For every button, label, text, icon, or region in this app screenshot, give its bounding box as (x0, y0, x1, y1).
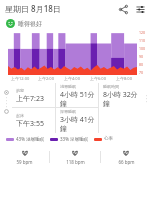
staticText: 上午4:00 (64, 76, 80, 81)
staticText: 上午6:00 (90, 76, 106, 81)
staticText: 睡眠時間 (103, 84, 119, 89)
staticText: 33% 深層睡眠 (60, 136, 89, 142)
staticText: 100 (139, 46, 146, 51)
button[interactable]: 66 bpm (101, 145, 151, 169)
staticText: 70 (139, 70, 144, 75)
staticText: 下午3:55 (16, 119, 44, 129)
staticText: 8小時 32分 鐘 (103, 90, 138, 108)
staticText: 星期日 8月18日 (5, 3, 61, 14)
button[interactable]: 睡眠時間 (99, 83, 141, 108)
staticText: 深層睡眠 (60, 109, 76, 114)
staticText: 59 bpm (16, 159, 33, 165)
staticText: 淺層睡眠 (60, 84, 76, 89)
staticText: 80 (139, 62, 144, 67)
button[interactable]: 118 bpm (50, 145, 100, 169)
staticText: 118 bpm (66, 159, 85, 165)
staticText: 上午8:00 (116, 76, 132, 81)
button[interactable]: 深層睡眠 (56, 108, 98, 133)
staticText: 起床 (16, 113, 24, 118)
button[interactable]: Share (116, 2, 130, 16)
button[interactable]: 淺層睡眠 (56, 83, 98, 107)
button[interactable]: 59 bpm (0, 145, 49, 169)
staticText: 心率 (104, 136, 113, 142)
button[interactable]: 起床 (12, 108, 55, 133)
staticText: 上午2:00 (38, 76, 54, 81)
staticText: 43% 淺層睡眠 (16, 136, 45, 142)
staticText: 就寢 (16, 88, 24, 93)
button[interactable]: Filter (133, 2, 147, 16)
staticText: 上午7:23 (16, 94, 44, 104)
staticText: 3小時 41分 鐘 (60, 115, 95, 133)
button[interactable]: 就寢 (12, 83, 55, 107)
staticText: 90 (139, 54, 144, 59)
staticText: 110 (139, 38, 146, 43)
staticText: 120 (139, 30, 146, 35)
staticText: 4小時 51分 鐘 (60, 90, 95, 107)
staticText: 66 bpm (118, 159, 135, 165)
button[interactable]: 睡得很好 (6, 17, 151, 30)
staticText: 睡得很好 (18, 20, 42, 28)
staticText: 上午12:00 (11, 76, 30, 81)
